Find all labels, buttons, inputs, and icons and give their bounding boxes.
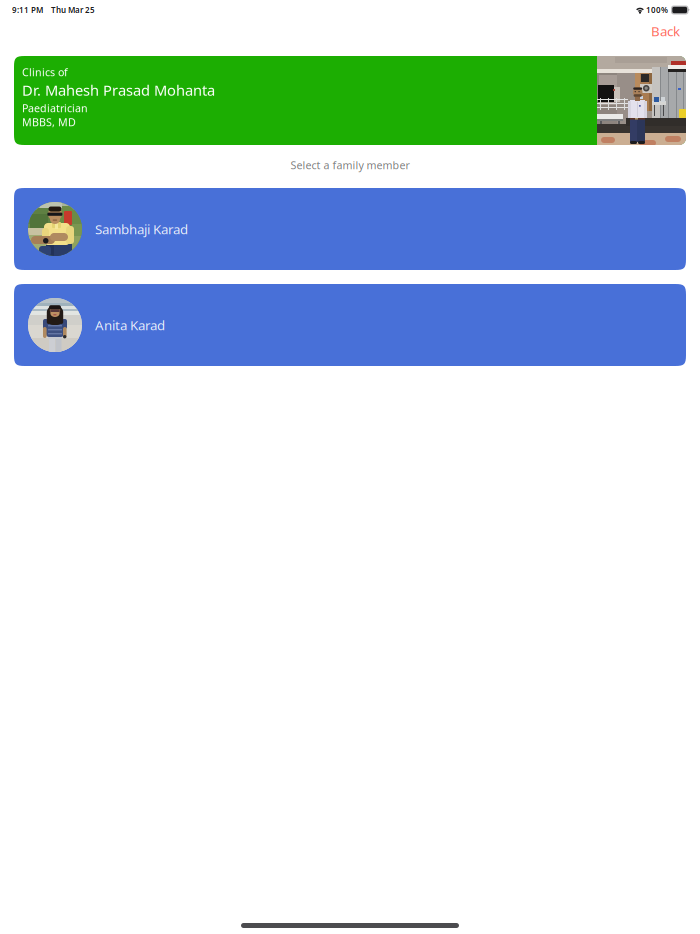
button[interactable]: Clinics of: [14, 56, 686, 145]
staticText: 100%: [646, 5, 668, 15]
staticText: Paediatrician: [22, 101, 88, 115]
button[interactable]: Back: [637, 15, 700, 47]
staticText: Select a family member: [290, 158, 409, 172]
button[interactable]: Sambhaji Karad: [14, 188, 686, 270]
staticText: 9:11 PM: [12, 5, 43, 15]
staticText: Back: [651, 22, 680, 40]
staticText: Dr. Mahesh Prasad Mohanta: [22, 80, 215, 100]
staticText: Clinics of: [22, 65, 68, 79]
staticText: Anita Karad: [95, 316, 165, 334]
staticText: Thu Mar 25: [51, 5, 95, 15]
staticText: MBBS, MD: [22, 115, 76, 129]
staticText: Sambhaji Karad: [95, 220, 188, 238]
button[interactable]: Anita Karad: [14, 284, 686, 366]
